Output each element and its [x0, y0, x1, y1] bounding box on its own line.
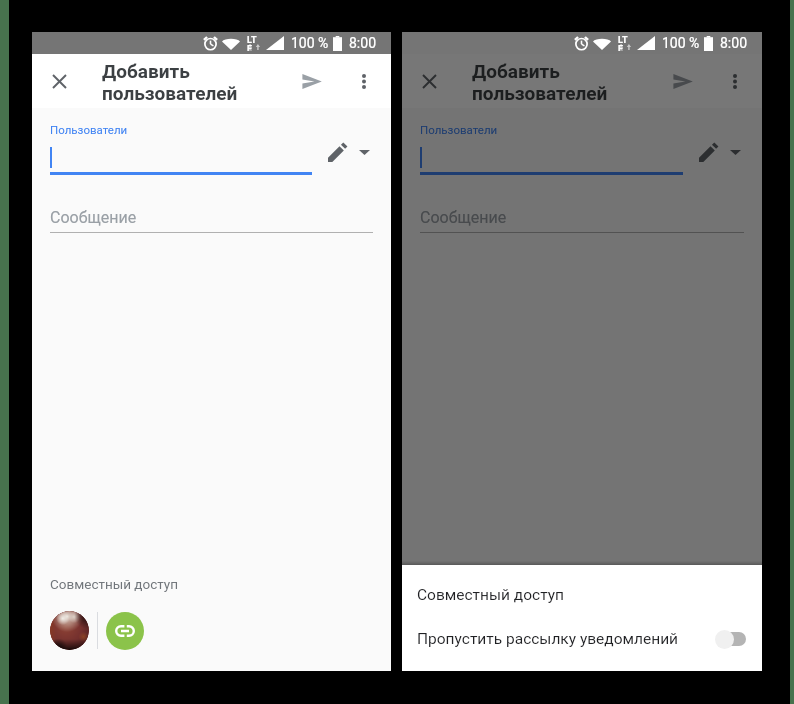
staticText: Пользователи — [420, 123, 498, 136]
button[interactable]: Close — [32, 54, 86, 108]
button[interactable]: More options — [336, 54, 391, 108]
button[interactable]: Пропустить рассылку уведомлений — [402, 623, 762, 655]
staticText: Добавить пользователей — [472, 60, 608, 105]
button[interactable]: More options — [707, 54, 762, 108]
staticText: Пропустить рассылку уведомлений — [417, 630, 679, 648]
button[interactable]: Close — [402, 54, 456, 108]
staticText: 100 % — [662, 35, 700, 51]
staticText: LTE — [247, 35, 261, 51]
staticText: LTE — [618, 35, 632, 51]
button[interactable]: Contact avatar — [50, 611, 89, 650]
staticText: Добавить пользователей — [102, 60, 238, 105]
staticText: 8:00 — [720, 35, 747, 51]
staticText: Сообщение — [50, 208, 137, 227]
staticText: 8:00 — [349, 35, 376, 51]
staticText: Совместный доступ — [50, 576, 178, 592]
button[interactable]: Send — [288, 54, 336, 108]
button[interactable]: Совместный доступ — [402, 579, 762, 611]
staticText: 100 % — [291, 35, 329, 51]
button[interactable]: Show more — [724, 136, 746, 175]
button[interactable]: Show more — [353, 136, 375, 175]
button[interactable]: Edit recipients — [325, 136, 349, 175]
staticText: Пользователи — [50, 123, 128, 136]
staticText: Совместный доступ — [417, 586, 564, 604]
button[interactable]: Edit recipients — [696, 136, 720, 175]
button[interactable]: Send — [659, 54, 707, 108]
staticText: Сообщение — [420, 208, 507, 227]
button[interactable]: Copy link — [106, 612, 144, 650]
